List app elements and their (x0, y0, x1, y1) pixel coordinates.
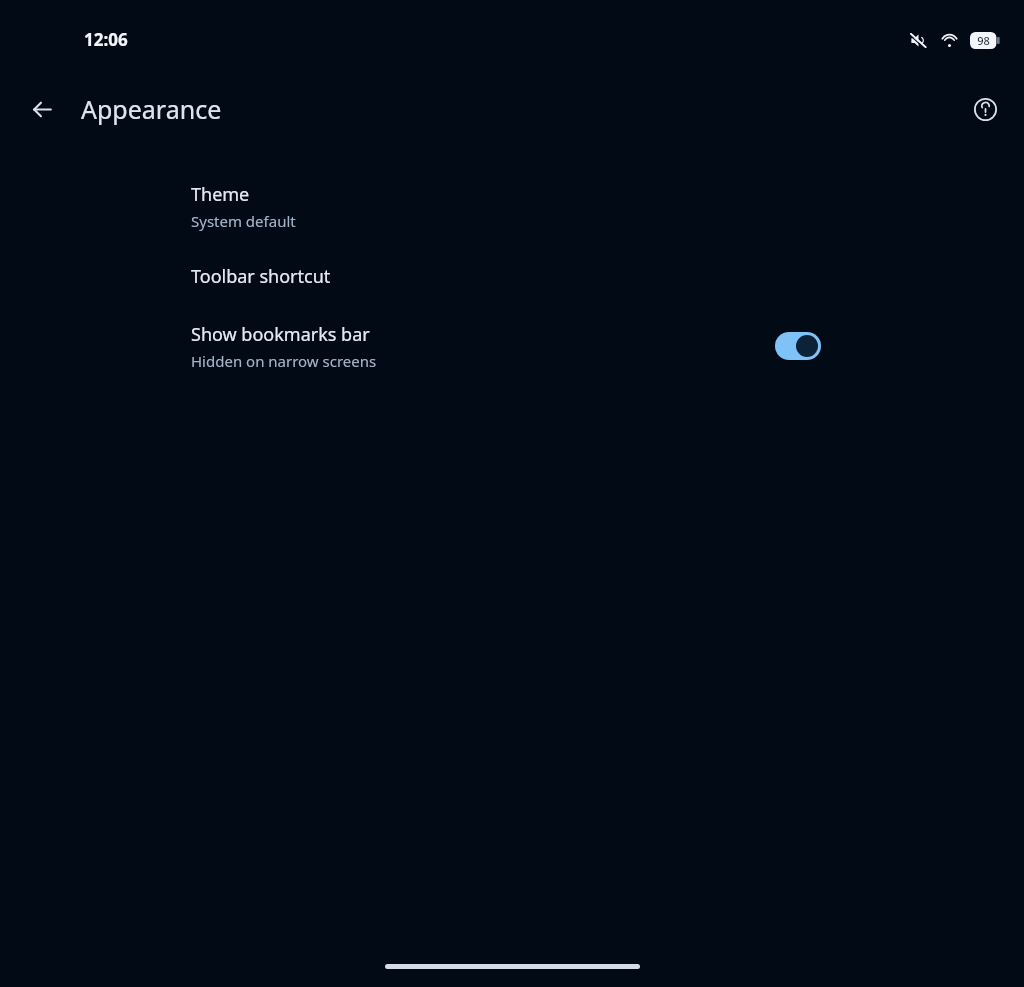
button[interactable]: Theme (0, 168, 1024, 244)
staticText: Theme (191, 182, 250, 207)
button[interactable]: Show bookmarks bar toggle (769, 326, 827, 366)
staticText: Hidden on narrow screens (191, 351, 377, 371)
staticText: Appearance (81, 92, 222, 126)
staticText: 12:06 (84, 28, 128, 51)
staticText: 98 (977, 33, 990, 48)
staticText: Toolbar shortcut (191, 264, 331, 289)
button[interactable]: Show bookmarks bar (0, 308, 1024, 384)
staticText: Show bookmarks bar (191, 322, 370, 347)
staticText: System default (191, 211, 296, 231)
button[interactable]: Help (963, 87, 1007, 131)
button[interactable]: Back (19, 86, 65, 132)
button[interactable]: Toolbar shortcut (0, 244, 1024, 308)
